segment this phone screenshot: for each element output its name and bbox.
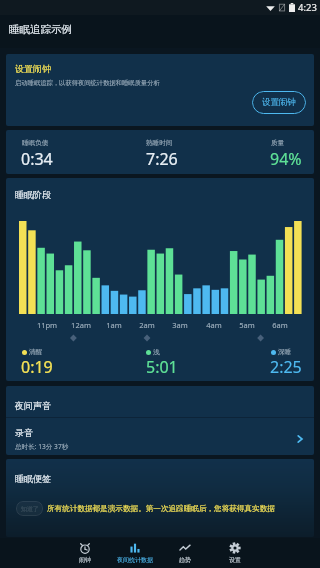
staticText: 3am	[166, 320, 194, 330]
button[interactable]: 夜间统计数据	[110, 538, 160, 568]
staticText: 录音	[15, 427, 33, 438]
staticText: 6am	[266, 320, 294, 330]
button[interactable]: 设置闹钟	[252, 91, 306, 114]
staticText: 所有统计数据都是演示数据。第一次追踪睡眠后，您将获得真实数据	[47, 504, 275, 514]
staticText: 7:26	[146, 148, 178, 170]
staticText: 设置闹钟	[262, 97, 296, 108]
staticText: 夜间声音	[15, 400, 51, 411]
staticText: 设置闹钟	[15, 63, 51, 74]
staticText: 夜间统计数据	[117, 556, 153, 564]
staticText: 深睡	[278, 348, 292, 356]
staticText: 浅	[153, 348, 160, 356]
staticText: 熟睡时间	[146, 139, 173, 147]
staticText: 睡眠负债	[22, 139, 49, 147]
staticText: 闹钟	[79, 556, 91, 564]
staticText: 0:34	[21, 148, 53, 170]
staticText: 5am	[233, 320, 261, 330]
other: 打开录音	[295, 434, 305, 444]
staticText: 趋势	[179, 556, 191, 564]
staticText: 0:19	[21, 356, 53, 378]
staticText: 5:01	[146, 356, 178, 378]
staticText: 设置	[229, 556, 241, 564]
staticText: 启动睡眠追踪，以获得夜间统计数据和睡眠质量分析	[15, 79, 160, 87]
staticText: 睡眠阶段	[15, 189, 51, 200]
staticText: 2:25	[270, 356, 302, 378]
staticText: 清醒	[29, 348, 43, 356]
staticText: 2am	[133, 320, 161, 330]
staticText: 知道了	[21, 505, 39, 513]
button[interactable]: 录音	[6, 420, 314, 455]
staticText: 4:23	[298, 1, 317, 14]
staticText: 质量	[271, 139, 285, 147]
staticText: 睡眠便签	[15, 473, 51, 484]
staticText: 12am	[67, 320, 95, 330]
staticText: 11pm	[33, 320, 61, 330]
staticText: 睡眠追踪示例	[9, 23, 72, 36]
button[interactable]: 趋势	[160, 538, 210, 568]
staticText: 总时长: 13分 37秒	[15, 442, 69, 451]
staticText: 1am	[100, 320, 128, 330]
staticText: 94%	[270, 148, 302, 170]
staticText: 4am	[200, 320, 228, 330]
button[interactable]: 设置	[210, 538, 260, 568]
button[interactable]: 闹钟	[60, 538, 110, 568]
button[interactable]: 知道了	[16, 501, 43, 516]
